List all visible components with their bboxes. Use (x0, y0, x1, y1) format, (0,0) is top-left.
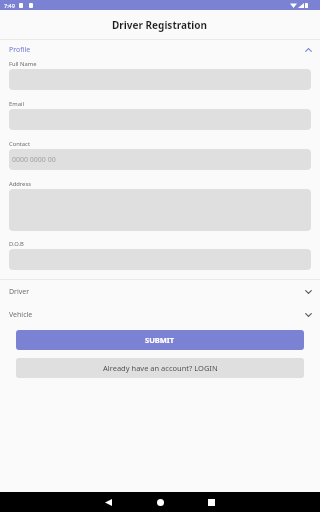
button[interactable]: Back (98, 492, 118, 512)
staticText: SUBMIT (145, 335, 175, 345)
staticText: Profile (9, 45, 31, 55)
staticText: Driver (9, 287, 30, 297)
button[interactable]: Home (150, 492, 170, 512)
staticText: 0000 0000 00 (12, 155, 56, 165)
staticText: Already have an account? LOGIN (103, 363, 218, 373)
button[interactable]: Recents (201, 492, 221, 512)
staticText: Vehicle (9, 310, 33, 320)
button[interactable]: 0000 0000 00 (9, 149, 311, 170)
staticText: D.O.B (9, 240, 24, 248)
button[interactable]: SUBMIT (16, 330, 304, 350)
staticText: Contact (9, 140, 30, 148)
staticText: Address (9, 180, 31, 188)
staticText: Full Name (9, 60, 37, 68)
button[interactable]: Already have an account? LOGIN (16, 358, 304, 378)
button[interactable]: Vehicle (0, 303, 320, 326)
staticText: 7:49 (4, 2, 15, 9)
button[interactable]: Profile (0, 40, 320, 59)
staticText: Email (9, 100, 24, 108)
button[interactable]: Driver (0, 280, 320, 303)
staticText: Driver Registration (112, 18, 208, 32)
